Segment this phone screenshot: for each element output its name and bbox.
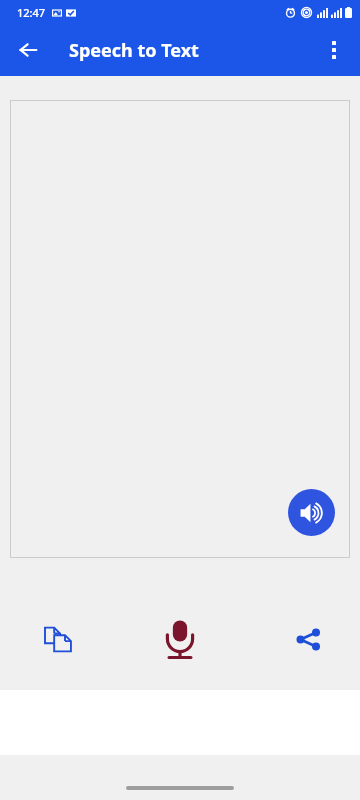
button[interactable]: Share [284,615,332,663]
staticText: Speech to Text [69,38,199,63]
button[interactable]: Copy text [34,615,82,663]
staticText: 12:47 [17,5,46,20]
button[interactable]: Start recording [149,608,211,670]
button[interactable]: More options [314,30,354,70]
button[interactable]: Speak text aloud [288,489,335,536]
button[interactable]: Back [8,30,48,70]
